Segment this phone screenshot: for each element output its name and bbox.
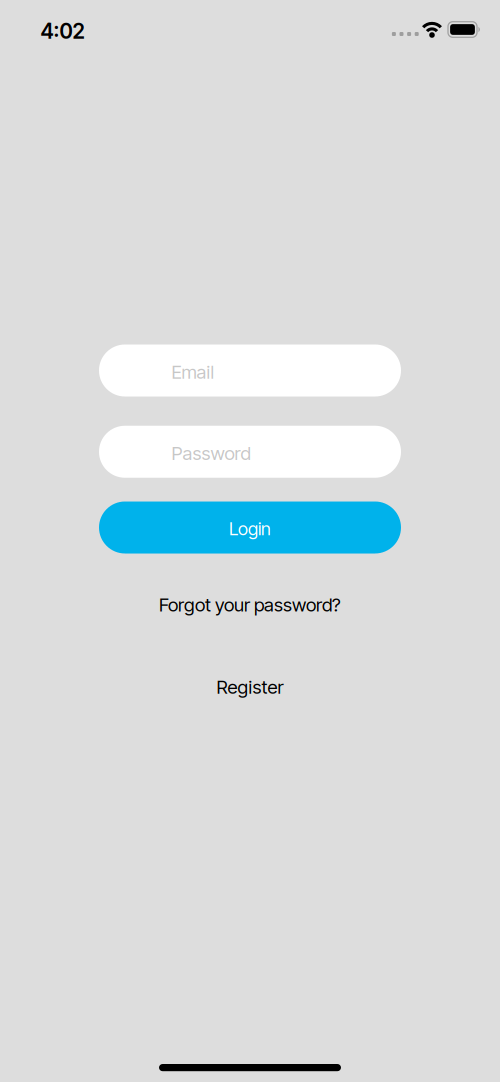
staticText: Forgot your password? [159, 593, 341, 616]
button[interactable]: Email [99, 344, 401, 396]
staticText: 4:02 [40, 18, 84, 44]
button[interactable]: Password [99, 426, 401, 478]
staticText: Password [171, 442, 250, 465]
button[interactable]: Register [216, 676, 283, 698]
button[interactable]: Login [99, 501, 401, 553]
button[interactable]: Forgot your password? [159, 593, 341, 616]
staticText: Register [216, 676, 283, 698]
staticText: Login [229, 518, 271, 540]
staticText: Email [171, 361, 214, 383]
